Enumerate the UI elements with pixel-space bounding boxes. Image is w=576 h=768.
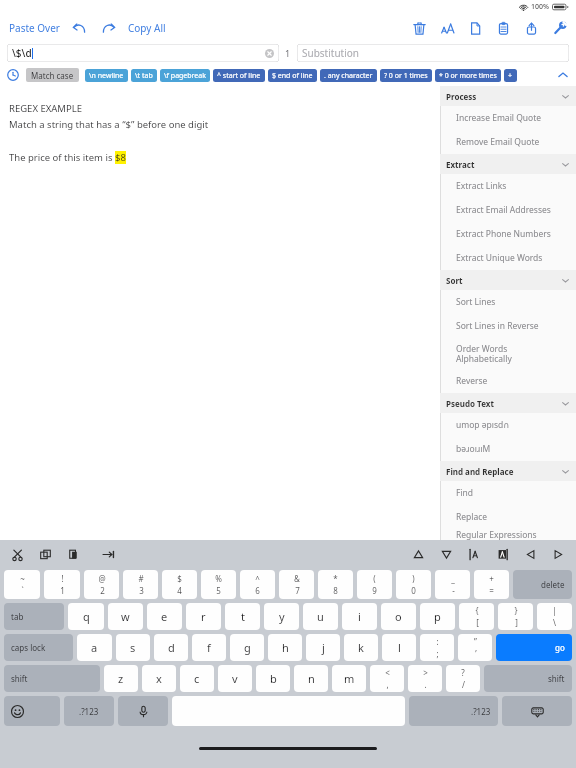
button[interactable]: o — [381, 603, 416, 630]
button[interactable]: Hide keyboard — [502, 696, 572, 726]
button[interactable]: n — [294, 665, 328, 692]
button[interactable]: Move down — [439, 547, 454, 562]
button[interactable]: f — [192, 634, 226, 661]
button[interactable]: Increase Email Quote — [440, 106, 576, 130]
button[interactable]: { — [459, 603, 494, 630]
button[interactable]: $ end of line — [268, 69, 317, 82]
button[interactable]: e — [147, 603, 182, 630]
button[interactable]: ? 0 or 1 times — [380, 69, 432, 82]
button[interactable]: umop ǝpısd∩ — [440, 413, 576, 437]
button[interactable]: # — [123, 570, 158, 599]
button[interactable]: Delete — [411, 20, 428, 37]
button[interactable]: New document — [467, 20, 484, 37]
button[interactable]: + — [474, 570, 509, 599]
button[interactable]: go — [496, 634, 572, 661]
button[interactable]: % — [201, 570, 236, 599]
button[interactable]: Select all — [495, 547, 510, 562]
button[interactable]: Extract Email Addresses — [440, 198, 576, 222]
button[interactable]: shift — [484, 665, 572, 692]
button[interactable]: Indent — [101, 547, 116, 562]
button[interactable]: Find — [440, 481, 576, 505]
button[interactable]: } — [498, 603, 533, 630]
button[interactable]: Paste Over — [7, 17, 62, 39]
button[interactable]: Emoji — [4, 696, 60, 726]
button[interactable]: ( — [357, 570, 392, 599]
button[interactable]: . any character — [320, 69, 377, 82]
button[interactable]: $ — [162, 570, 197, 599]
button[interactable]: g — [230, 634, 264, 661]
button[interactable]: Settings — [551, 20, 568, 37]
button[interactable]: Remove Email Quote — [440, 130, 576, 154]
button[interactable]: Find and Replace — [440, 461, 576, 481]
button[interactable]: ) — [396, 570, 431, 599]
button[interactable]: p — [420, 603, 455, 630]
button[interactable]: \$\d — [7, 44, 279, 62]
button[interactable]: h — [268, 634, 302, 661]
button[interactable]: \f pagebreak — [160, 69, 210, 82]
button[interactable]: History — [5, 67, 21, 83]
button[interactable]: Order Words Alphabetically — [440, 338, 576, 369]
button[interactable]: & — [279, 570, 314, 599]
button[interactable]: \t tab — [131, 69, 157, 82]
button[interactable]: Match case — [26, 68, 79, 82]
button[interactable]: ^ start of line — [213, 69, 265, 82]
button[interactable]: Clear — [265, 49, 274, 58]
button[interactable]: caps lock — [4, 634, 73, 661]
button[interactable]: Undo — [69, 18, 89, 38]
button[interactable]: m — [332, 665, 366, 692]
button[interactable]: ” — [458, 634, 492, 661]
button[interactable]: ^ — [240, 570, 275, 599]
button[interactable]: Select — [467, 547, 482, 562]
button[interactable]: a — [77, 634, 112, 661]
button[interactable]: .?123 — [64, 696, 114, 726]
button[interactable]: < — [370, 665, 404, 692]
button[interactable]: ! — [44, 570, 80, 599]
button[interactable]: t — [225, 603, 260, 630]
button[interactable]: shift — [4, 665, 100, 692]
button[interactable]: Extract — [440, 154, 576, 174]
button[interactable]: Dictation — [118, 696, 168, 726]
button[interactable]: Regular Expressions — [440, 529, 576, 540]
button[interactable]: Substitution — [297, 44, 569, 62]
button[interactable]: Clipboard — [495, 20, 512, 37]
button[interactable]: Next — [551, 547, 566, 562]
button[interactable]: * — [318, 570, 353, 599]
button[interactable]: Sort — [440, 270, 576, 290]
button[interactable]: s — [116, 634, 150, 661]
button[interactable]: x — [142, 665, 176, 692]
button[interactable]: + — [504, 69, 517, 82]
button[interactable]: d — [154, 634, 188, 661]
button[interactable]: Copy — [38, 547, 53, 562]
button[interactable]: @ — [84, 570, 119, 599]
button[interactable]: Copy All — [126, 17, 168, 39]
button[interactable]: Process — [440, 86, 576, 106]
button[interactable]: tab — [4, 603, 64, 630]
button[interactable]: Pseudo Text — [440, 393, 576, 413]
button[interactable]: .?123 — [409, 696, 498, 726]
button[interactable]: * 0 or more times — [435, 69, 501, 82]
button[interactable]: q — [68, 603, 104, 630]
button[interactable]: Text size — [439, 20, 456, 37]
button[interactable]: Extract Phone Numbers — [440, 222, 576, 246]
button[interactable]: ? — [446, 665, 480, 692]
button[interactable]: bǝɹoıɹıM — [440, 437, 576, 461]
button[interactable]: r — [186, 603, 221, 630]
button[interactable]: Replace — [440, 505, 576, 529]
button[interactable]: v — [218, 665, 252, 692]
button[interactable]: > — [408, 665, 442, 692]
button[interactable]: w — [108, 603, 143, 630]
button[interactable]: Paste — [66, 547, 81, 562]
button[interactable]: u — [303, 603, 338, 630]
button[interactable]: | — [537, 603, 572, 630]
button[interactable]: y — [264, 603, 299, 630]
button[interactable]: Share — [523, 20, 540, 37]
button[interactable]: z — [104, 665, 138, 692]
button[interactable]: b — [256, 665, 290, 692]
button[interactable]: Previous — [523, 547, 538, 562]
button[interactable]: _ — [435, 570, 470, 599]
button[interactable]: ~ — [4, 570, 40, 599]
button[interactable]: Reverse — [440, 369, 576, 393]
button[interactable]: l — [382, 634, 416, 661]
button[interactable]: delete — [513, 570, 572, 599]
